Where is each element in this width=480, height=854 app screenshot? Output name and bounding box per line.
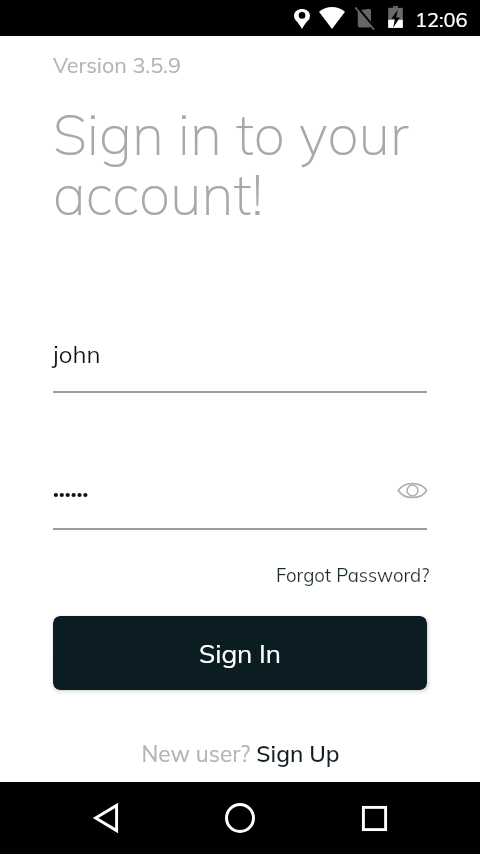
button[interactable]: Forgot Password?: [276, 563, 430, 586]
staticText: Version 3.5.9: [53, 51, 181, 78]
staticText: Sign In: [199, 637, 282, 670]
staticText: New user? Sign Up: [141, 739, 340, 767]
button[interactable]: Sign In: [53, 616, 427, 690]
staticText: john: [53, 339, 101, 369]
button[interactable]: Back: [76, 788, 136, 848]
staticText: Sign in to your account!: [53, 99, 409, 229]
button[interactable]: New user? Sign Up: [141, 739, 340, 767]
staticText: 12:06: [415, 7, 468, 32]
button[interactable]: Show password: [393, 471, 432, 510]
button[interactable]: Home: [210, 788, 270, 848]
button[interactable]: Recents: [344, 788, 404, 848]
staticText: Forgot Password?: [276, 563, 430, 586]
